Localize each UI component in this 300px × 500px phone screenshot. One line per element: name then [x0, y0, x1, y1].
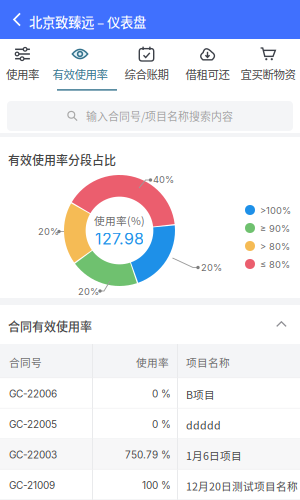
staticText: 合同有效使用率 — [8, 317, 92, 335]
staticText: GC-21009 — [9, 479, 55, 491]
staticText: 合同号 — [9, 354, 42, 370]
staticText: ≥ 90% — [260, 223, 290, 234]
staticText: 100 % — [142, 479, 171, 491]
staticText: 综合账期 — [124, 66, 168, 82]
staticText: 20% — [38, 226, 59, 237]
staticText: 输入合同号/项目名称搜索内容 — [86, 108, 233, 124]
staticText: ddddd — [186, 417, 221, 433]
staticText: 使用率(%) — [94, 213, 145, 228]
staticText: 借租可还 — [185, 66, 229, 82]
button[interactable]: 有效使用率 — [46, 40, 114, 92]
staticText: 20% — [78, 286, 99, 297]
staticText: 0 % — [152, 388, 171, 400]
staticText: >100% — [260, 205, 291, 216]
staticText: 有效使用率分段占比 — [8, 151, 116, 168]
staticText: 127.98 — [95, 229, 144, 248]
staticText: 北京致臻远 – 仪表盘 — [29, 12, 146, 31]
button[interactable]: 输入合同号/项目名称搜索内容 — [7, 101, 293, 131]
staticText: GC-22003 — [9, 449, 57, 461]
staticText: 0 % — [152, 418, 171, 430]
staticText: > 80% — [260, 241, 290, 252]
button[interactable]: 宜买断物资 — [234, 40, 300, 92]
staticText: 40% — [153, 174, 174, 185]
button[interactable]: 返回 — [0, 0, 34, 39]
button[interactable]: 使用率 — [0, 40, 45, 92]
button[interactable]: 借租可还 — [179, 40, 236, 92]
staticText: GC-22005 — [9, 418, 57, 430]
staticText: B项目 — [186, 387, 215, 402]
staticText: 项目名称 — [186, 354, 230, 370]
button[interactable]: 合同有效使用率 — [0, 305, 300, 344]
staticText: 20% — [201, 262, 222, 273]
staticText: 12月20日测试项目名称 — [186, 478, 298, 494]
staticText: ≤ 80% — [260, 259, 290, 270]
staticText: 1月6日项目 — [186, 448, 242, 463]
staticText: 有效使用率 — [52, 66, 107, 82]
staticText: GC-22006 — [9, 388, 57, 400]
button[interactable]: 综合账期 — [118, 40, 175, 92]
staticText: 750.79 % — [125, 449, 171, 461]
staticText: 宜买断物资 — [240, 66, 295, 82]
staticText: 使用率 — [6, 66, 39, 82]
staticText: 使用率 — [136, 354, 169, 370]
